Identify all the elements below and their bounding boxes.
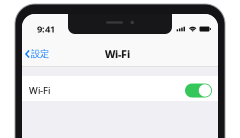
- staticText: Wi-Fi: [105, 47, 130, 61]
- button[interactable]: 設定: [22, 43, 49, 65]
- staticText: 9:41: [37, 23, 55, 35]
- button[interactable]: Wi-Fi: [22, 76, 218, 101]
- staticText: Wi-Fi: [29, 84, 50, 97]
- staticText: 設定: [31, 48, 49, 60]
